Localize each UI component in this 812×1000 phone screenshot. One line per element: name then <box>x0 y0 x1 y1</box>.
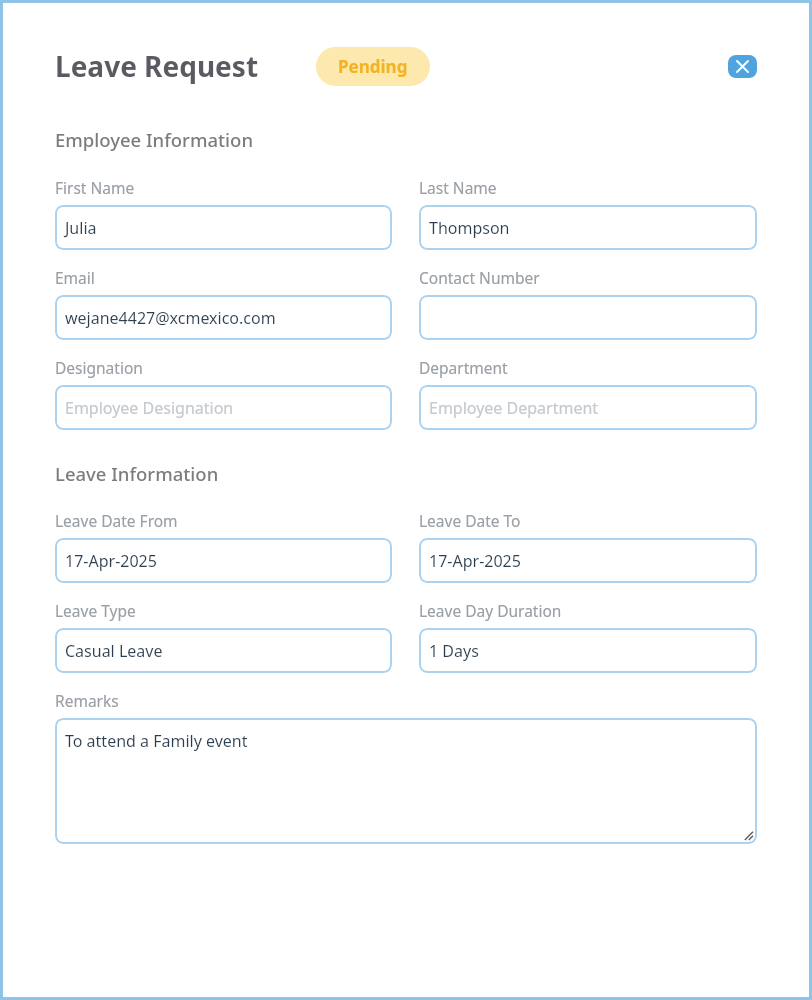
button[interactable]: Employee Department <box>419 385 757 430</box>
staticText: 17-Apr-2025 <box>65 550 157 572</box>
staticText: Employee Department <box>429 397 599 419</box>
button[interactable]: Casual Leave <box>55 628 392 673</box>
staticText: Leave Type <box>55 600 136 621</box>
button[interactable]: To attend a Family event <box>55 718 757 844</box>
staticText: wejane4427@xcmexico.com <box>65 307 276 329</box>
staticText: Leave Request <box>55 47 259 85</box>
staticText: Leave Date From <box>55 510 178 531</box>
staticText: Department <box>419 357 508 378</box>
staticText: Last Name <box>419 177 497 198</box>
staticText: 17-Apr-2025 <box>429 550 521 572</box>
staticText: Leave Date To <box>419 510 521 531</box>
button[interactable]: wejane4427@xcmexico.com <box>55 295 392 340</box>
staticText: Employee Information <box>55 127 254 152</box>
button[interactable]: Employee Designation <box>55 385 392 430</box>
staticText: Contact Number <box>419 267 540 288</box>
button[interactable]: Pending <box>316 47 430 86</box>
staticText: Remarks <box>55 690 119 711</box>
button[interactable]: 1 Days <box>419 628 757 673</box>
staticText: Email <box>55 267 95 288</box>
button[interactable]: 17-Apr-2025 <box>419 538 757 583</box>
button[interactable]: Close <box>728 55 757 78</box>
button[interactable] <box>419 295 757 340</box>
button[interactable]: Julia <box>55 205 392 250</box>
staticText: Thompson <box>429 217 510 239</box>
staticText: Designation <box>55 357 143 378</box>
staticText: Leave Day Duration <box>419 600 562 621</box>
button[interactable]: Thompson <box>419 205 757 250</box>
staticText: To attend a Family event <box>65 730 248 752</box>
staticText: Pending <box>338 55 408 78</box>
button[interactable]: 17-Apr-2025 <box>55 538 392 583</box>
staticText: Leave Information <box>55 461 219 486</box>
staticText: Employee Designation <box>65 397 234 419</box>
staticText: Casual Leave <box>65 640 163 662</box>
staticText: Julia <box>65 217 97 239</box>
staticText: First Name <box>55 177 135 198</box>
staticText: 1 Days <box>429 640 479 662</box>
